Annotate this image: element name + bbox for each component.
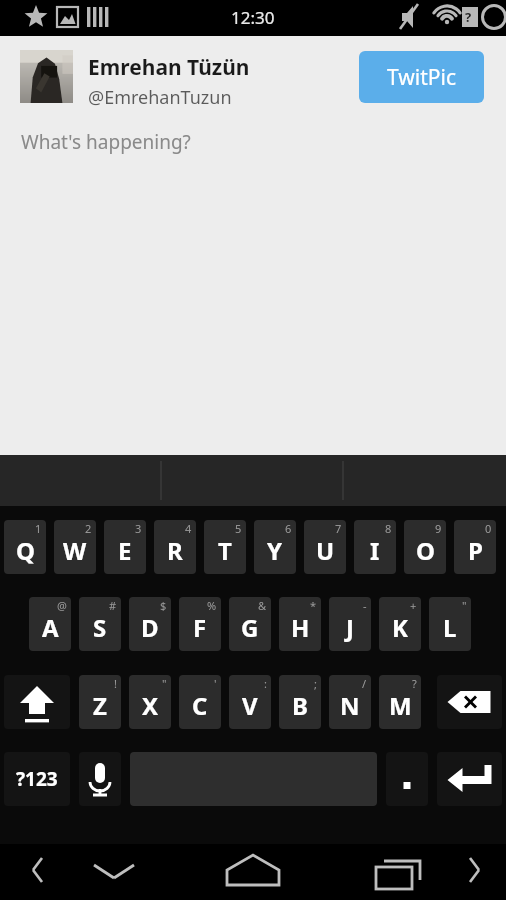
staticText: ; — [314, 676, 317, 691]
staticText: 0 — [485, 521, 492, 536]
staticText: 7 — [335, 521, 342, 536]
button[interactable]: 4 — [154, 520, 196, 574]
staticText: F — [193, 611, 207, 644]
button[interactable]: % — [179, 597, 221, 651]
button[interactable]: Voice input — [79, 752, 121, 806]
staticText: 4 — [185, 521, 192, 536]
staticText: $ — [160, 598, 167, 613]
button[interactable]: * — [279, 597, 321, 651]
button[interactable]: 3 — [104, 520, 146, 574]
staticText: Z — [93, 689, 107, 722]
staticText: 6 — [285, 521, 292, 536]
staticText: B — [292, 689, 308, 722]
staticText: 12:30 — [231, 6, 275, 29]
staticText: % — [207, 598, 217, 613]
staticText: 3 — [135, 521, 142, 536]
staticText: I — [370, 534, 380, 567]
staticText: G — [241, 611, 259, 644]
staticText: 5 — [235, 521, 242, 536]
button[interactable]: ' — [179, 675, 221, 729]
button[interactable]: Backspace — [437, 675, 502, 729]
staticText: " — [162, 676, 167, 691]
staticText: " — [462, 598, 467, 613]
staticText: Emrehan Tüzün — [88, 53, 250, 82]
button[interactable]: Shift — [4, 675, 70, 729]
button[interactable]: Home — [205, 844, 301, 900]
button[interactable]: Previous — [6, 844, 68, 900]
staticText: ! — [114, 676, 117, 691]
staticText: P — [468, 534, 483, 567]
button[interactable]: 1 — [4, 520, 46, 574]
button[interactable]: TwitPic — [359, 51, 484, 103]
staticText: ? — [465, 8, 472, 26]
button[interactable]: ?123 — [4, 752, 70, 806]
staticText: K — [392, 611, 408, 644]
staticText: Q — [16, 534, 35, 567]
button[interactable]: " — [129, 675, 171, 729]
staticText: 1 — [35, 521, 42, 536]
staticText: - — [363, 598, 367, 613]
button[interactable]: Recent apps — [360, 844, 440, 900]
staticText: N — [340, 689, 360, 722]
button[interactable]: 9 — [404, 520, 446, 574]
staticText: O — [416, 534, 435, 567]
button[interactable]: ! — [79, 675, 121, 729]
button[interactable]: : — [229, 675, 271, 729]
staticText: ? — [412, 676, 417, 691]
button[interactable]: " — [429, 597, 471, 651]
button[interactable] — [386, 752, 428, 806]
staticText: Y — [267, 534, 283, 567]
button[interactable]: 2 — [54, 520, 96, 574]
staticText: @ — [57, 598, 67, 613]
button[interactable]: 5 — [204, 520, 246, 574]
button[interactable]: 7 — [304, 520, 346, 574]
button[interactable]: 0 — [454, 520, 496, 574]
staticText: # — [109, 598, 117, 613]
staticText: E — [118, 534, 132, 567]
staticText: S — [93, 611, 107, 644]
staticText: X — [142, 689, 159, 722]
staticText: A — [42, 611, 59, 644]
staticText: @EmrehanTuzun — [88, 85, 232, 110]
staticText: ?123 — [16, 766, 58, 792]
staticText: & — [258, 598, 267, 613]
staticText: What's happening? — [21, 129, 191, 155]
button[interactable]: ; — [279, 675, 321, 729]
button[interactable]: $ — [129, 597, 171, 651]
button[interactable]: Hide keyboard — [78, 844, 150, 900]
button[interactable]: @ — [29, 597, 71, 651]
staticText: 9 — [435, 521, 442, 536]
staticText: D — [141, 611, 159, 644]
button[interactable]: & — [229, 597, 271, 651]
staticText: M — [389, 689, 412, 722]
button[interactable]: 8 — [354, 520, 396, 574]
button[interactable]: Next — [444, 844, 506, 900]
button[interactable]: 6 — [254, 520, 296, 574]
staticText: + — [410, 598, 417, 613]
button[interactable]: ? — [379, 675, 421, 729]
staticText: 2 — [85, 521, 92, 536]
staticText: C — [192, 689, 208, 722]
button[interactable]: + — [379, 597, 421, 651]
button[interactable] — [20, 50, 73, 103]
staticText: J — [346, 611, 354, 644]
staticText: H — [291, 611, 310, 644]
staticText: T — [218, 534, 232, 567]
staticText: : — [264, 676, 267, 691]
button[interactable]: - — [329, 597, 371, 651]
staticText: R — [167, 534, 183, 567]
staticText: / — [362, 676, 367, 691]
staticText: L — [443, 611, 457, 644]
button[interactable]: What's happening? — [0, 116, 506, 455]
button[interactable]: Enter — [437, 752, 502, 806]
staticText: 8 — [385, 521, 392, 536]
staticText: TwitPic — [387, 63, 456, 92]
staticText: U — [316, 534, 335, 567]
staticText: W — [63, 534, 87, 567]
staticText: ' — [214, 676, 217, 691]
button[interactable]: # — [79, 597, 121, 651]
staticText: * — [310, 598, 317, 613]
staticText: V — [242, 689, 258, 722]
button[interactable]: / — [329, 675, 371, 729]
